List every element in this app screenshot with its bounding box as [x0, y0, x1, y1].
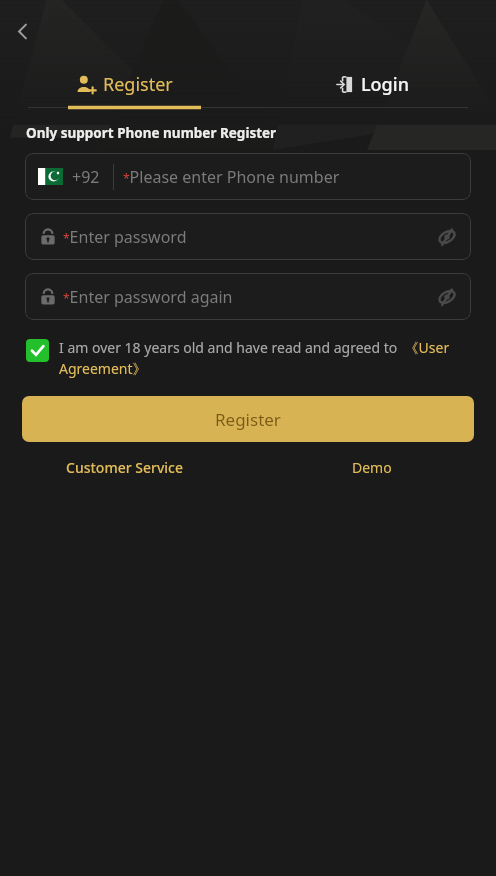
button[interactable]: Show password — [427, 277, 467, 317]
button[interactable]: Login — [248, 62, 496, 106]
button[interactable]: +92 — [25, 153, 471, 200]
staticText: Demo — [352, 458, 392, 477]
button[interactable]: Back — [4, 13, 40, 49]
button[interactable]: Customer Service — [0, 458, 248, 477]
button[interactable]: I am over 18 years old and have read and… — [26, 338, 470, 379]
staticText: Customer Service — [66, 458, 183, 477]
staticText: *Enter password again — [63, 286, 233, 308]
staticText: +92 — [72, 166, 100, 188]
staticText: *Please enter Phone number — [123, 166, 340, 188]
staticText: Login — [361, 72, 409, 97]
staticText: Register — [215, 408, 281, 431]
button[interactable]: Register — [0, 62, 248, 106]
button[interactable]: Show password — [427, 217, 467, 257]
button[interactable]: *Enter password — [25, 213, 471, 260]
staticText: *Enter password — [63, 226, 187, 248]
button[interactable]: *Enter password again — [25, 273, 471, 320]
staticText: I am over 18 years old and have read and… — [59, 338, 470, 379]
staticText: Only support Phone number Register — [26, 124, 277, 142]
button[interactable]: Demo — [248, 458, 496, 477]
staticText: Register — [103, 72, 173, 97]
button[interactable]: Register — [22, 396, 474, 442]
